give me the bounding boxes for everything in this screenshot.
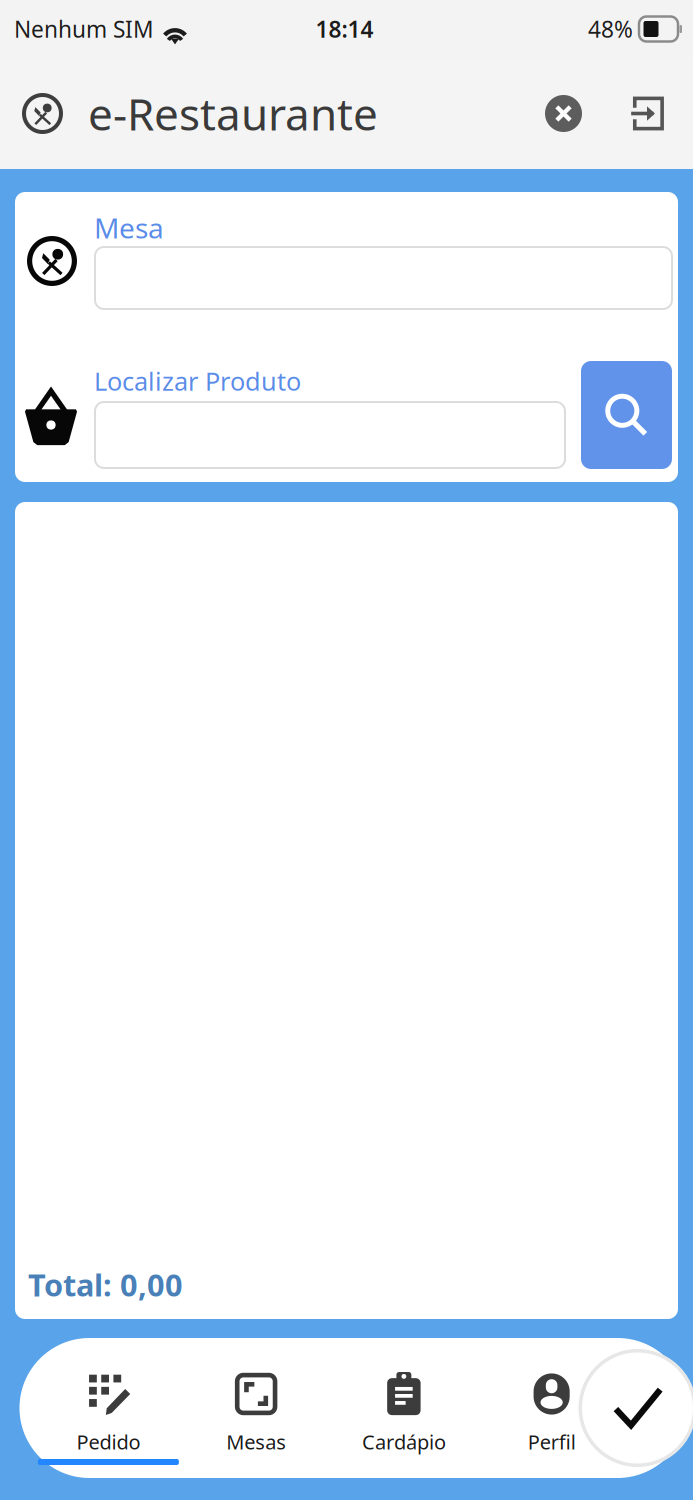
staticText: 18:14 — [315, 14, 373, 44]
button[interactable]: Pedido — [34, 1338, 182, 1478]
staticText: Mesa — [94, 209, 164, 246]
staticText: e-Restaurante — [88, 84, 378, 143]
button[interactable]: Cancelar — [523, 73, 615, 154]
staticText: 48% — [588, 14, 633, 44]
staticText: Localizar Produto — [94, 364, 301, 398]
button[interactable]: Perfil — [478, 1338, 626, 1478]
staticText: Pedido — [76, 1428, 140, 1455]
staticText: Total: 0,00 — [28, 1264, 183, 1305]
button[interactable]: Confirmar — [578, 1338, 693, 1478]
staticText: Cardápio — [362, 1428, 446, 1455]
staticText: Perfil — [528, 1428, 576, 1455]
button[interactable]: Sair — [615, 73, 679, 153]
button[interactable]: Buscar — [581, 361, 672, 469]
button[interactable]: Mesas — [182, 1338, 330, 1478]
staticText: Mesas — [226, 1428, 286, 1455]
button[interactable]: Cardápio — [330, 1338, 478, 1478]
staticText: Nenhum SIM — [14, 14, 154, 44]
